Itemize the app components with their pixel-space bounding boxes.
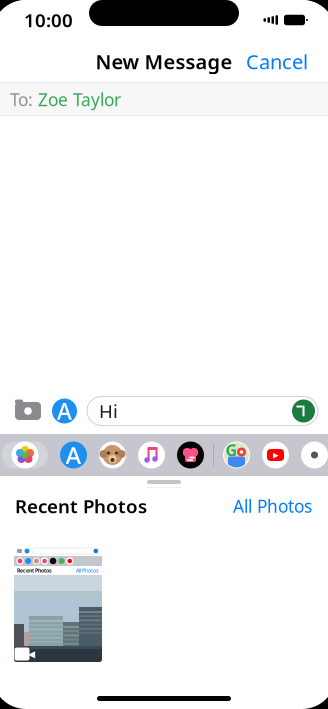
button[interactable]: All Photos	[223, 488, 312, 523]
staticText: ▶	[272, 450, 278, 460]
button[interactable]: YouTube	[262, 441, 289, 468]
staticText: A	[57, 396, 72, 426]
button[interactable]: More apps	[301, 441, 328, 468]
button[interactable]: Memoji	[99, 441, 126, 468]
staticText: Recent Photos	[15, 494, 147, 518]
button[interactable]: Music	[138, 441, 165, 468]
staticText: Cancel	[246, 48, 308, 75]
button[interactable]: Digital Touch	[177, 441, 204, 468]
staticText: All Photos	[233, 494, 312, 517]
staticText: Zoe Taylor	[38, 88, 121, 111]
button[interactable]: Send	[292, 399, 315, 422]
button[interactable]: App Store	[60, 441, 87, 468]
button[interactable]: Photos	[2, 441, 48, 468]
staticText: New Message	[95, 48, 232, 75]
staticText: To:	[10, 88, 33, 111]
staticText: Recent Photos	[17, 567, 52, 574]
button[interactable]: Cancel	[232, 40, 322, 83]
staticText: 10:00	[24, 8, 73, 32]
staticText: ◀	[28, 649, 35, 659]
button[interactable]: Maps	[223, 441, 250, 468]
staticText: All Photos	[76, 567, 99, 574]
button[interactable]: Recent photo	[14, 546, 102, 662]
staticText: Hi	[99, 399, 118, 423]
button[interactable]: Zoe Taylor	[38, 84, 121, 115]
button[interactable]: Apps	[52, 398, 77, 423]
staticText: G	[225, 439, 237, 461]
button[interactable]: Camera	[14, 399, 42, 423]
staticText: A	[65, 439, 81, 471]
